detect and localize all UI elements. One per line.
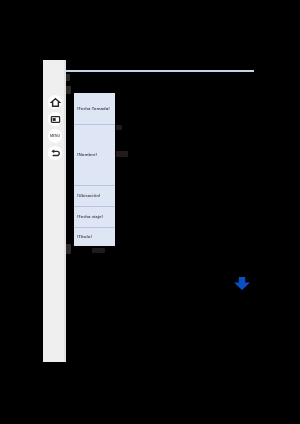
button[interactable]: Display: [48, 112, 62, 126]
button[interactable]: [Fecha Tomada]: [74, 93, 115, 124]
button[interactable]: [Fecha viaje]: [74, 207, 115, 227]
staticText: [Ubicación]: [77, 193, 101, 199]
staticText: [Título]: [77, 234, 92, 240]
button[interactable]: MENU: [48, 129, 62, 143]
staticText: [Fecha Tomada]: [77, 106, 110, 112]
button[interactable]: Back: [48, 146, 62, 160]
staticText: [Fecha viaje]: [77, 214, 103, 220]
staticText: MENU: [50, 134, 60, 138]
button[interactable]: [Título]: [74, 228, 115, 246]
button[interactable]: [Ubicación]: [74, 186, 115, 206]
staticText: [Nombre]: [77, 152, 97, 158]
button[interactable]: Scroll down: [232, 275, 252, 291]
button[interactable]: [Nombre]: [74, 125, 115, 185]
button[interactable]: Home: [48, 95, 62, 109]
